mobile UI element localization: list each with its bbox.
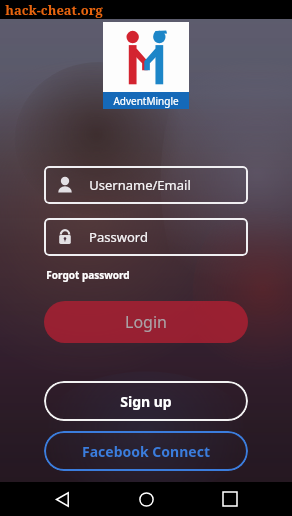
button[interactable]: Password — [44, 218, 248, 256]
staticText: Username/Email — [89, 176, 191, 194]
button[interactable]: Recent apps — [208, 482, 252, 516]
staticText: hack-cheat.org — [5, 1, 103, 19]
staticText: Login — [125, 311, 167, 333]
button[interactable]: Sign up — [44, 381, 248, 421]
staticText: Forgot password — [46, 268, 130, 282]
staticText: Sign up — [120, 392, 172, 411]
button[interactable]: Facebook Connect — [44, 431, 248, 471]
button[interactable]: Login — [44, 301, 248, 343]
staticText: AdventMingle — [113, 94, 179, 108]
button[interactable]: Forgot password — [44, 266, 132, 284]
button[interactable]: Back — [40, 482, 84, 516]
button[interactable]: Username/Email — [44, 166, 248, 204]
button[interactable]: Home — [124, 482, 168, 516]
staticText: Password — [89, 228, 148, 246]
staticText: Facebook Connect — [82, 442, 210, 461]
